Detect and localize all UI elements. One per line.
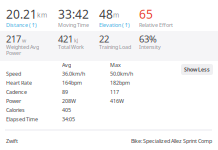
staticText: Power — [6, 49, 21, 57]
staticText: Max — [110, 61, 121, 69]
staticText: 22 — [99, 33, 109, 45]
staticText: 405 — [62, 106, 71, 114]
staticText: w — [22, 37, 26, 44]
staticText: Total Work — [58, 43, 84, 51]
staticText: Heart Rate — [6, 79, 32, 86]
staticText: 117 — [110, 88, 119, 95]
staticText: Elevation (↑) — [99, 21, 130, 29]
staticText: Moving Time — [58, 21, 89, 29]
staticText: 65 — [139, 6, 153, 22]
staticText: 50.0km/h — [110, 70, 133, 77]
staticText: 416W — [110, 97, 124, 104]
staticText: Distance (↑) — [6, 21, 37, 29]
staticText: 33:42 — [58, 6, 89, 22]
staticText: kJ — [74, 37, 78, 44]
staticText: 89 — [62, 88, 68, 95]
staticText: 164bpm — [62, 79, 82, 86]
staticText: 48 — [99, 6, 113, 22]
staticText: Speed — [6, 70, 21, 77]
staticText: Intensity — [139, 43, 161, 51]
staticText: Relative Effort — [139, 21, 173, 29]
staticText: Cadence — [6, 88, 27, 95]
staticText: km — [37, 10, 47, 19]
staticText: 208W — [62, 97, 76, 104]
staticText: Weighted Avg — [6, 43, 39, 51]
staticText: Show Less — [184, 66, 210, 73]
staticText: Power — [6, 97, 21, 104]
staticText: Zwift — [6, 137, 18, 145]
staticText: 217 — [6, 33, 21, 45]
staticText: Avg — [62, 61, 71, 69]
staticText: 34:05 — [62, 116, 75, 123]
staticText: 182bpm — [110, 79, 130, 86]
staticText: 421 — [58, 33, 73, 45]
staticText: 63% — [139, 33, 157, 45]
staticText: Bike: Specialized Allez Sprint Comp — [131, 137, 212, 145]
staticText: Elapsed Time — [6, 116, 38, 123]
staticText: 20.21 — [6, 6, 37, 22]
staticText: Training Load — [99, 43, 131, 51]
staticText: m — [113, 10, 119, 19]
button[interactable]: Show Less — [181, 64, 213, 75]
staticText: 36.0km/h — [62, 70, 85, 77]
staticText: Calories — [6, 106, 25, 114]
